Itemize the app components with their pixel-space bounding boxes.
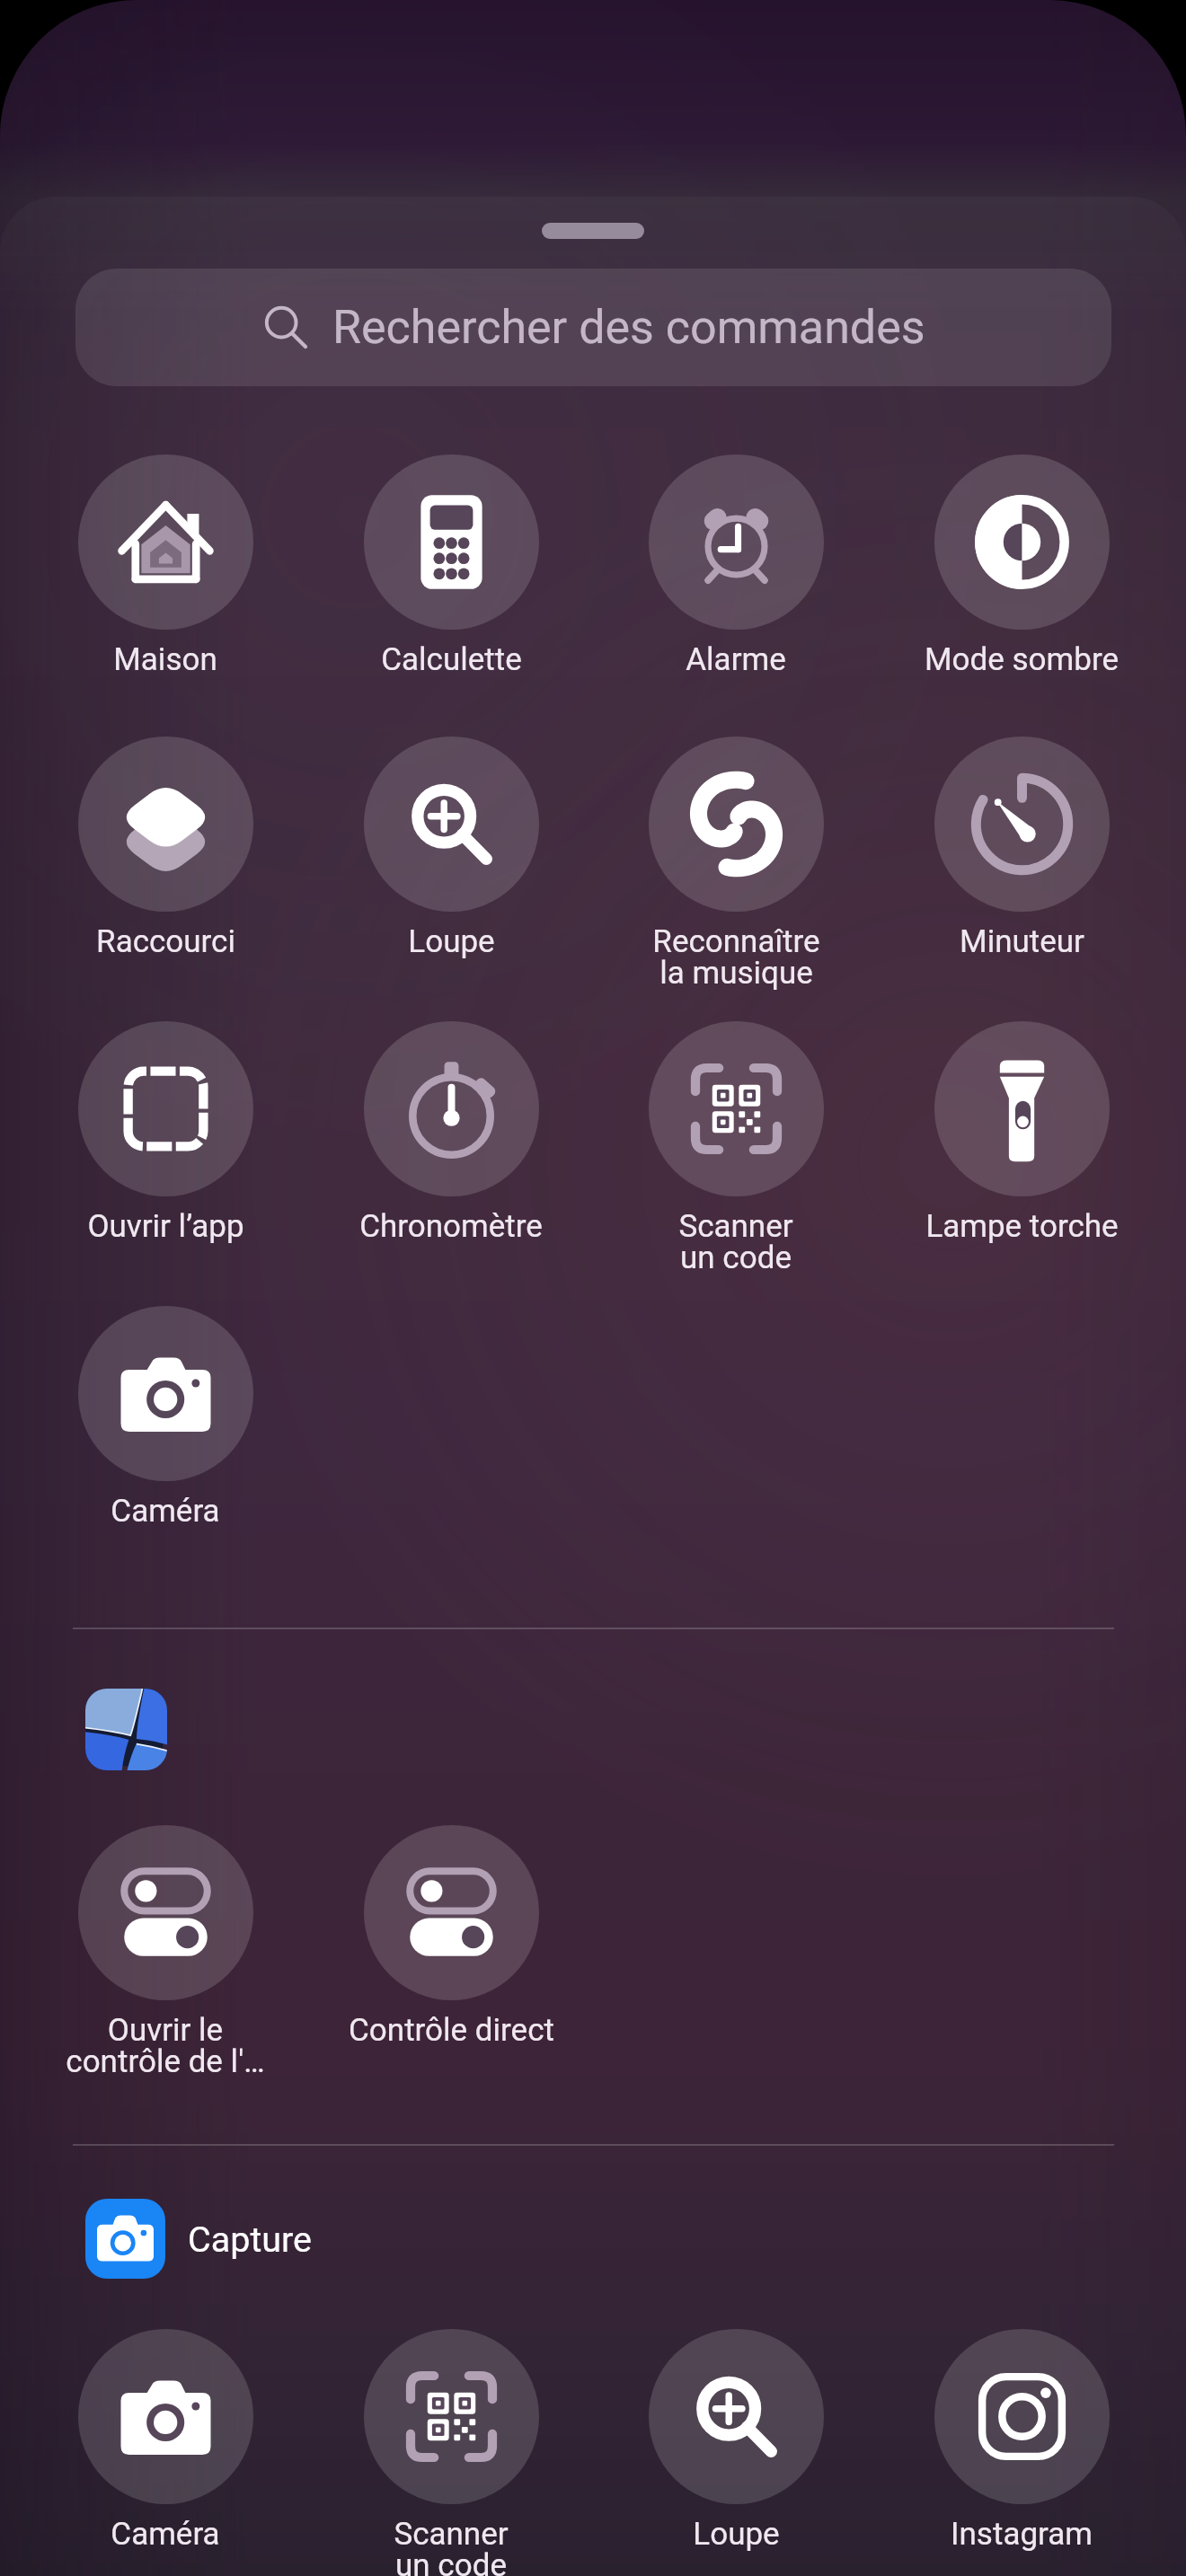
staticText: Instagram <box>951 2516 1093 2553</box>
button[interactable]: Scanner un code <box>316 2329 586 2576</box>
button[interactable]: Reconnaître la musique <box>601 737 871 991</box>
staticText: Scanner un code <box>678 1208 793 1275</box>
staticText: Mode sombre <box>925 641 1119 678</box>
staticText: Maison <box>113 641 217 678</box>
staticText: Scanner un code <box>394 2516 509 2576</box>
button[interactable]: Instagram <box>887 2329 1156 2553</box>
staticText: Alarme <box>686 641 786 678</box>
staticText: Minuteur <box>960 923 1084 960</box>
staticText: Rechercher des commandes <box>332 300 925 355</box>
button[interactable]: Raccourci <box>31 737 300 960</box>
button[interactable]: Application <box>85 1689 167 1770</box>
staticText: Loupe <box>408 923 495 960</box>
staticText: Raccourci <box>96 923 235 960</box>
staticText: Calculette <box>381 641 522 678</box>
button[interactable]: Ouvrir le contrôle de l'… <box>31 1825 300 2079</box>
staticText: Chronomètre <box>359 1208 543 1245</box>
button[interactable]: Calculette <box>316 454 586 678</box>
staticText: Contrôle direct <box>349 2012 554 2049</box>
staticText: Caméra <box>111 2516 220 2553</box>
staticText: Caméra <box>111 1493 220 1530</box>
button[interactable]: Alarme <box>601 454 871 678</box>
button[interactable]: Mode sombre <box>887 454 1156 678</box>
staticText: Reconnaître la musique <box>652 923 820 991</box>
button[interactable]: Loupe <box>316 737 586 960</box>
staticText: Lampe torche <box>925 1208 1119 1245</box>
button[interactable]: Contrôle direct <box>316 1825 586 2049</box>
button[interactable]: Loupe <box>601 2329 871 2553</box>
button[interactable]: Rechercher des commandes <box>75 269 1111 386</box>
staticText: Ouvrir l’app <box>87 1208 244 1245</box>
button[interactable]: Maison <box>31 454 300 678</box>
button[interactable]: Ouvrir l’app <box>31 1021 300 1245</box>
button[interactable]: Lampe torche <box>887 1021 1156 1245</box>
staticText: Loupe <box>693 2516 780 2553</box>
button[interactable]: Caméra <box>31 1306 300 1530</box>
staticText: Ouvrir le contrôle de l'… <box>66 2012 265 2079</box>
staticText: Capture <box>188 2219 313 2260</box>
button[interactable]: Chronomètre <box>316 1021 586 1245</box>
button[interactable]: Minuteur <box>887 737 1156 960</box>
button[interactable]: Scanner un code <box>601 1021 871 1275</box>
button[interactable]: Caméra <box>31 2329 300 2553</box>
button[interactable]: Capture <box>85 2199 313 2279</box>
